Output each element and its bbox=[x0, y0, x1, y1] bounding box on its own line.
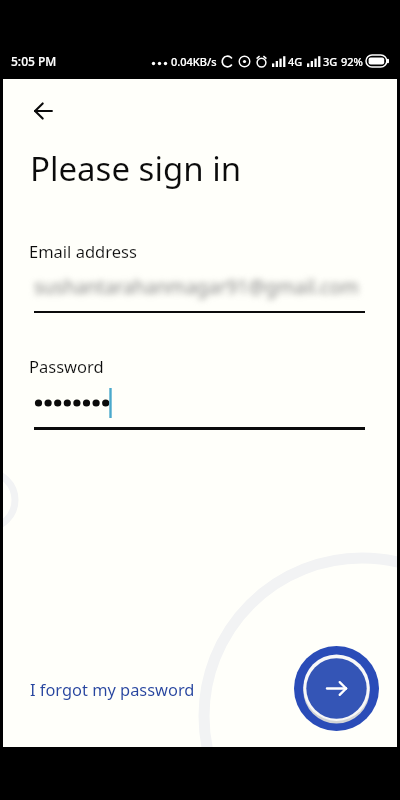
staticText: Please sign in bbox=[30, 146, 242, 191]
staticText: 92% bbox=[341, 54, 363, 69]
staticText: 0.04KB/s bbox=[171, 54, 217, 69]
staticText: sushantarahanmagar91@gmail.com bbox=[34, 274, 359, 300]
staticText: I forgot my password bbox=[30, 678, 195, 700]
button[interactable]: I forgot my password bbox=[22, 671, 203, 707]
staticText: 4G bbox=[288, 54, 303, 69]
staticText: Email address bbox=[29, 240, 137, 262]
staticText: 3G bbox=[323, 54, 338, 69]
button[interactable]: Back bbox=[20, 88, 66, 134]
staticText: 5:05 PM bbox=[11, 53, 57, 69]
staticText: Password bbox=[29, 355, 104, 377]
button[interactable]: Continue bbox=[294, 646, 379, 731]
